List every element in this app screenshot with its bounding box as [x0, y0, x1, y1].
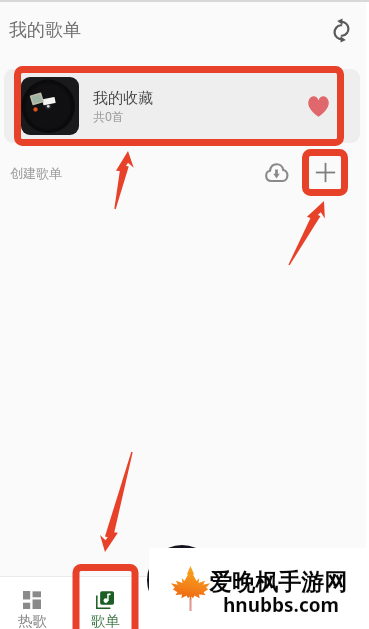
button[interactable]: 排行 — [142, 578, 214, 629]
button[interactable]: Download — [260, 155, 292, 187]
button[interactable]: 电台 — [215, 578, 287, 629]
staticText: 共0首 — [93, 108, 124, 124]
staticText: hnubbs.com — [223, 592, 340, 618]
staticText: 歌单 — [91, 612, 120, 629]
button[interactable]: Sync — [324, 13, 358, 47]
button[interactable]: Favorite — [298, 86, 338, 126]
button[interactable]: 热歌 — [0, 578, 68, 629]
staticText: 爱晚枫手游网 — [209, 568, 347, 597]
button[interactable]: 歌单 — [69, 578, 141, 629]
button[interactable]: 我的 — [288, 578, 360, 629]
staticText: 我的歌单 — [9, 19, 81, 42]
staticText: 热歌 — [18, 612, 47, 629]
button[interactable]: 我的收藏 — [4, 69, 360, 143]
staticText: 创建歌单 — [10, 165, 62, 181]
button[interactable]: Create playlist — [309, 156, 341, 188]
staticText: 我的收藏 — [93, 89, 153, 108]
